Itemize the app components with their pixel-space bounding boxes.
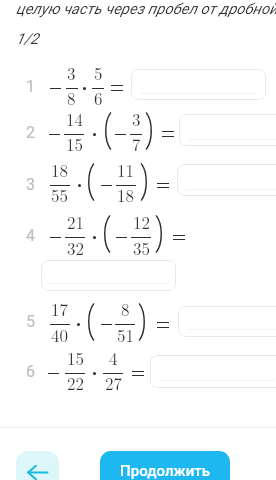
staticText: 2 xyxy=(26,123,35,142)
staticText: 32 xyxy=(67,236,84,260)
staticText: 51 xyxy=(117,323,134,347)
staticText: 18 xyxy=(117,183,134,207)
button[interactable]: Поле ответа xyxy=(41,260,176,291)
staticText: 22 xyxy=(67,371,84,395)
staticText: 3 xyxy=(26,175,35,194)
staticText: 4 xyxy=(109,346,118,370)
staticText: 3 xyxy=(67,61,76,85)
staticText: 8 xyxy=(67,86,76,110)
staticText: 40 xyxy=(51,323,68,347)
staticText: 1/2 xyxy=(16,30,39,48)
staticText: 7 xyxy=(132,132,141,156)
staticText: 8 xyxy=(121,297,130,321)
button[interactable]: Поле ответа xyxy=(177,164,276,196)
staticText: целую часть через пробел от дробной xyxy=(16,0,276,18)
button[interactable]: Продолжить xyxy=(100,451,230,480)
staticText: 35 xyxy=(133,236,150,260)
staticText: 17 xyxy=(51,297,68,321)
staticText: 5 xyxy=(94,61,103,85)
staticText: 3 xyxy=(132,107,141,131)
staticText: 15 xyxy=(66,132,83,156)
button[interactable]: Назад xyxy=(16,451,59,480)
staticText: 6 xyxy=(94,86,103,110)
staticText: 15 xyxy=(67,346,84,370)
staticText: 14 xyxy=(66,107,83,131)
button[interactable]: Поле ответа xyxy=(150,355,276,388)
staticText: 4 xyxy=(26,226,35,245)
staticText: Продолжить xyxy=(120,462,210,480)
staticText: 5 xyxy=(26,312,35,331)
button[interactable]: Поле ответа xyxy=(179,114,276,146)
button[interactable]: Поле ответа xyxy=(178,306,276,337)
staticText: 55 xyxy=(51,183,68,207)
button[interactable]: Поле ответа xyxy=(131,69,266,100)
staticText: 11 xyxy=(117,158,134,182)
staticText: 12 xyxy=(133,210,150,234)
staticText: 18 xyxy=(51,158,68,182)
staticText: 21 xyxy=(67,210,84,234)
staticText: 1 xyxy=(26,77,35,96)
staticText: 6 xyxy=(26,362,35,381)
staticText: 27 xyxy=(105,371,122,395)
